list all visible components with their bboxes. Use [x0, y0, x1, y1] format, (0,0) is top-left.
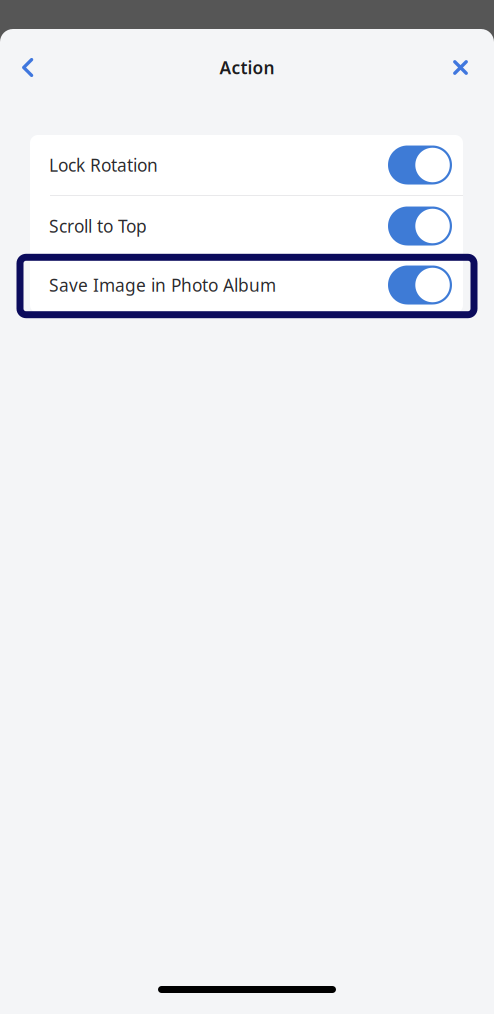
staticText: Scroll to Top	[49, 214, 147, 237]
button[interactable]: Lock Rotation	[30, 135, 463, 195]
button[interactable]: Close	[439, 45, 494, 89]
button[interactable]: Save Image in Photo Album	[30, 257, 463, 313]
button[interactable]: Back	[0, 45, 47, 89]
staticText: Lock Rotation	[49, 153, 158, 176]
staticText: Save Image in Photo Album	[49, 273, 276, 296]
staticText: Action	[219, 56, 274, 79]
button[interactable]: Scroll to Top	[30, 196, 463, 256]
